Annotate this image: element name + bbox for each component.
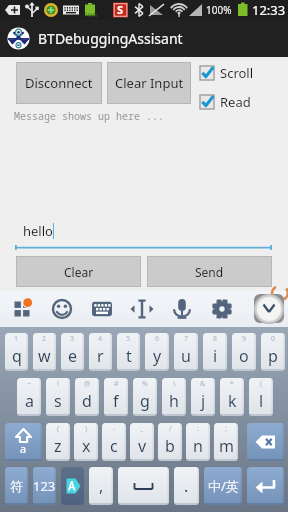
staticText: 4 [98, 334, 103, 344]
staticText: 6 [155, 334, 160, 344]
button[interactable]: 1 [5, 333, 28, 371]
button[interactable]: . [174, 467, 199, 505]
staticText: Clear Input [115, 74, 184, 92]
button[interactable]: , [89, 467, 113, 505]
staticText: - [113, 424, 116, 434]
staticText: a [20, 441, 27, 456]
button[interactable]: \ [162, 378, 186, 416]
button[interactable]: ) [74, 423, 98, 461]
button[interactable]: # [104, 378, 128, 416]
button[interactable]: _ [130, 423, 154, 461]
button[interactable]: Clear Input [107, 62, 191, 104]
staticText: 0 [271, 334, 276, 344]
button[interactable]: 中/英 [204, 467, 242, 505]
button[interactable]: Clear [16, 256, 141, 287]
staticText: h [169, 390, 179, 412]
staticText: 7 [184, 334, 189, 344]
staticText: 1 [14, 334, 19, 344]
button[interactable]: 8 [203, 333, 227, 371]
staticText: ~ [27, 379, 32, 389]
staticText: 5 [126, 334, 131, 344]
staticText: % [142, 379, 148, 389]
button[interactable]: ( [249, 378, 273, 416]
button[interactable]: * [220, 378, 244, 416]
staticText: x [82, 435, 91, 457]
staticText: r [97, 345, 104, 367]
staticText: s [54, 390, 62, 412]
button[interactable]: Apps [2, 291, 42, 327]
staticText: Clear [64, 264, 94, 280]
staticText: m [219, 435, 234, 457]
button[interactable]: Enter [247, 467, 284, 505]
staticText: d [82, 390, 92, 412]
staticText: hello [23, 222, 53, 240]
button[interactable]: Scroll [200, 64, 254, 82]
staticText: p [268, 345, 278, 367]
staticText: . [184, 475, 189, 497]
staticText: 12:33 [252, 1, 286, 19]
button[interactable]: Input method [61, 467, 84, 505]
staticText: 2 [42, 334, 47, 344]
button[interactable]: 7 [174, 333, 198, 371]
button[interactable]: & [191, 378, 215, 416]
button[interactable]: Settings [202, 291, 242, 327]
button[interactable] [118, 467, 169, 505]
button[interactable]: 123 [33, 467, 56, 505]
staticText: o [239, 345, 249, 367]
button[interactable]: Backspace [247, 423, 284, 461]
button[interactable]: Shift [5, 423, 42, 461]
staticText: n [193, 435, 203, 457]
staticText: t [126, 345, 132, 367]
button[interactable]: ! [46, 378, 70, 416]
staticText: Disconnect [25, 74, 93, 92]
button[interactable]: Read [200, 93, 251, 111]
button[interactable]: Cursor [122, 291, 162, 327]
button[interactable]: Emoji [42, 291, 82, 327]
staticText: 符 [10, 478, 23, 494]
staticText: 3 [70, 334, 75, 344]
button[interactable]: @ [75, 378, 99, 416]
button[interactable]: ( [46, 423, 70, 461]
staticText: Send [195, 264, 224, 280]
staticText: Scroll [220, 64, 254, 82]
staticText: l [259, 390, 264, 412]
staticText: c [110, 435, 118, 457]
staticText: v [138, 435, 147, 457]
staticText: a [25, 390, 34, 412]
staticText: ) [85, 424, 88, 434]
staticText: ! [57, 379, 59, 389]
staticText: ; [225, 424, 227, 434]
staticText: Read [220, 93, 251, 111]
staticText: e [68, 345, 78, 367]
button[interactable]: Voice input [162, 291, 202, 327]
button[interactable]: 6 [145, 333, 169, 371]
staticText: b [165, 435, 175, 457]
staticText: S [117, 2, 124, 17]
staticText: : [197, 424, 199, 434]
staticText: w [38, 345, 51, 367]
staticText: j [201, 390, 206, 412]
button[interactable]: ~ [17, 378, 41, 416]
staticText: y [153, 345, 162, 367]
staticText: 8 [213, 334, 218, 344]
button[interactable]: 2 [33, 333, 56, 371]
button[interactable]: - [102, 423, 126, 461]
button[interactable]: : [186, 423, 210, 461]
staticText: 100% [206, 3, 232, 17]
button[interactable]: 3 [61, 333, 84, 371]
button[interactable]: % [133, 378, 157, 416]
button[interactable]: Keyboard [82, 291, 122, 327]
button[interactable]: ; [214, 423, 238, 461]
button[interactable]: 9 [232, 333, 256, 371]
button[interactable]: 4 [89, 333, 112, 371]
staticText: \ [173, 379, 176, 389]
staticText: ( [57, 424, 60, 434]
button[interactable]: 符 [5, 467, 28, 505]
button[interactable]: / [158, 423, 182, 461]
button[interactable]: 5 [117, 333, 140, 371]
button[interactable]: Send [147, 256, 272, 287]
button[interactable]: Disconnect [16, 62, 102, 104]
staticText: * [230, 379, 234, 389]
button[interactable]: Clock [252, 291, 286, 327]
button[interactable]: 0 [261, 333, 285, 371]
